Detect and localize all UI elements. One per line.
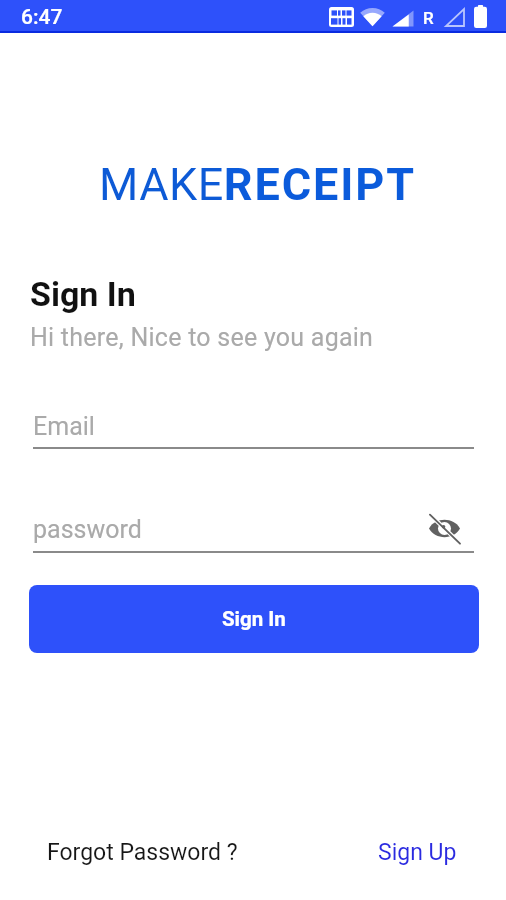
staticText: Hi there, Nice to see you again (30, 323, 374, 352)
staticText: R (423, 8, 434, 28)
staticText: 6:47 (21, 5, 63, 30)
staticText: Email (33, 412, 95, 441)
button[interactable]: Show password (413, 506, 475, 550)
staticText: password (33, 515, 142, 544)
staticText: Sign In (222, 607, 286, 631)
button[interactable]: Sign Up (378, 839, 457, 866)
staticText: MAKERECEIPT (99, 158, 416, 211)
button[interactable]: Forgot Password ? (47, 839, 238, 866)
staticText: Sign In (30, 274, 136, 314)
button[interactable]: Sign In (29, 585, 479, 653)
